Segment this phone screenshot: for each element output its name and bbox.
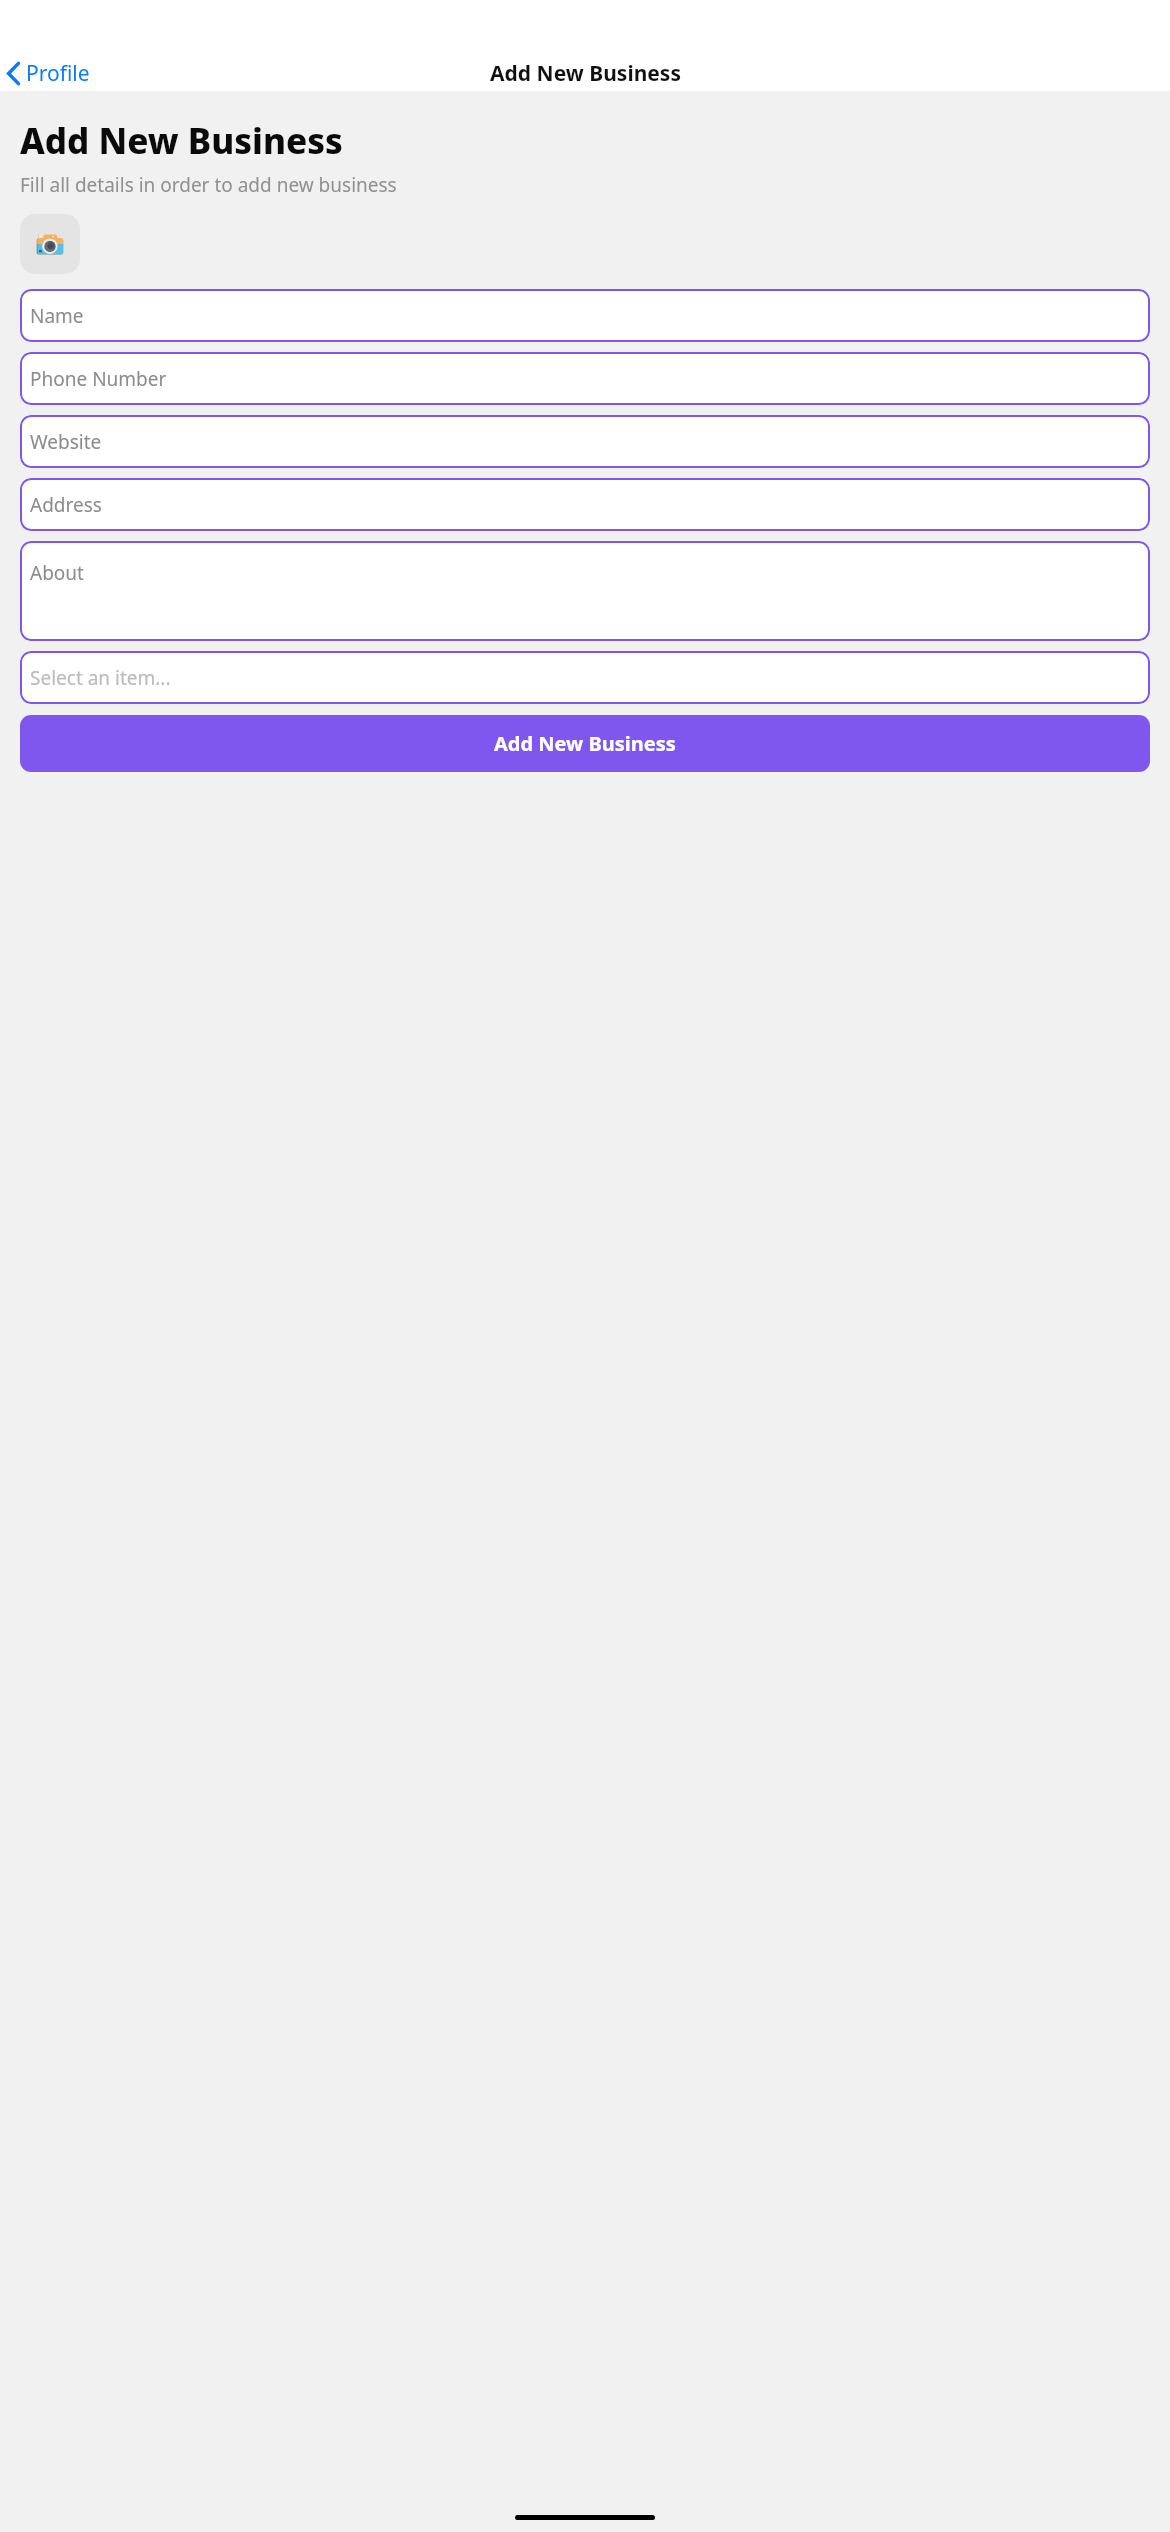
staticText: Address (30, 492, 102, 518)
button[interactable]: About (20, 541, 1150, 641)
staticText: Name (30, 303, 84, 329)
button[interactable]: Phone Number (20, 352, 1150, 405)
staticText: Select an item... (30, 665, 171, 691)
staticText: Phone Number (30, 366, 167, 392)
staticText: Add New Business (490, 59, 681, 88)
button[interactable]: Address (20, 478, 1150, 531)
staticText: Website (30, 429, 102, 455)
staticText: Fill all details in order to add new bus… (20, 172, 397, 198)
other: Back (7, 62, 20, 85)
button[interactable]: Name (20, 289, 1150, 342)
button[interactable]: Back (0, 56, 100, 91)
button[interactable]: Add photo (20, 214, 80, 274)
staticText: Add New Business (20, 117, 343, 165)
button[interactable]: Add New Business (20, 715, 1150, 772)
button[interactable]: Website (20, 415, 1150, 468)
staticText: Add New Business (494, 730, 676, 757)
button[interactable]: Select an item... (20, 651, 1150, 704)
staticText: Profile (26, 59, 90, 88)
staticText: About (30, 560, 84, 586)
